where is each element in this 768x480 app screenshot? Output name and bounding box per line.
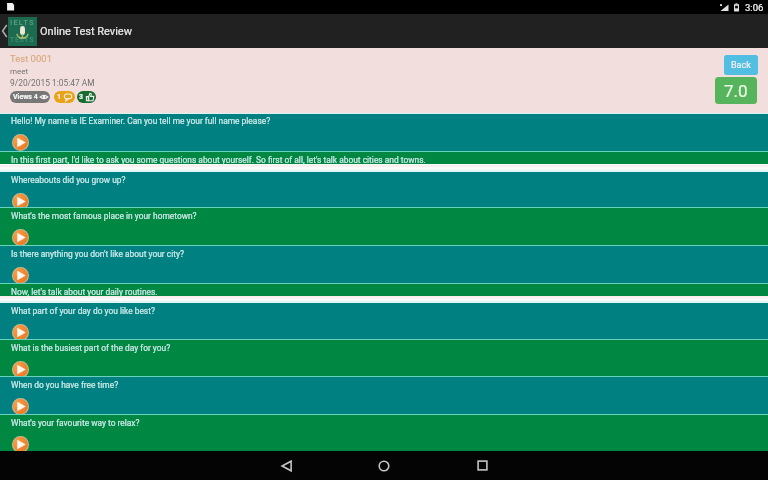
staticText: Online Test Review	[40, 25, 132, 38]
button[interactable]: Hello! My name is IE Examiner. Can you t…	[0, 113, 768, 152]
staticText: When do you have free time?	[11, 380, 119, 390]
staticText: 1	[57, 93, 62, 101]
button[interactable]: 3	[77, 91, 96, 103]
button[interactable]: What's your favourite way to relax?	[0, 415, 768, 451]
button[interactable]: Back	[724, 55, 758, 75]
staticText: 9/20/2015 1:05:47 AM	[10, 78, 95, 88]
button[interactable]: What part of your day do you like best?	[0, 303, 768, 340]
button[interactable]: Play audio	[12, 134, 29, 151]
staticText: Views 4	[13, 93, 38, 101]
staticText: Whereabouts did you grow up?	[11, 175, 126, 185]
button[interactable]: Is there anything you don't like about y…	[0, 246, 768, 284]
button[interactable]: When do you have free time?	[0, 377, 768, 415]
button[interactable]: 1	[54, 91, 75, 103]
staticText: What's your favourite way to relax?	[11, 418, 140, 428]
button[interactable]: Play audio	[12, 229, 29, 246]
button[interactable]: Views 4	[10, 91, 50, 103]
button[interactable]: Back	[266, 451, 306, 480]
button[interactable]: Play audio	[12, 324, 29, 341]
staticText: IELTS	[10, 18, 35, 27]
staticText: meet	[10, 67, 29, 76]
button[interactable]: Play audio	[12, 361, 29, 378]
staticText: 3:06	[745, 2, 764, 13]
staticText: Back	[731, 60, 751, 71]
button[interactable]: Play audio	[12, 398, 29, 415]
staticText: Test 0001	[10, 53, 52, 64]
staticText: TESTS	[10, 36, 35, 44]
button[interactable]: What is the busiest part of the day for …	[0, 340, 768, 377]
button[interactable]: Whereabouts did you grow up?	[0, 172, 768, 208]
button[interactable]: Play audio	[12, 267, 29, 284]
button[interactable]: Play audio	[12, 436, 29, 453]
staticText: Hello! My name is IE Examiner. Can you t…	[11, 116, 271, 126]
staticText: What's the most famous place in your hom…	[11, 211, 197, 221]
button[interactable]: Recent apps	[462, 451, 502, 480]
button[interactable]: Now, let's talk about your daily routine…	[0, 284, 768, 296]
staticText: What part of your day do you like best?	[11, 306, 155, 316]
staticText: Is there anything you don't like about y…	[11, 249, 184, 259]
button[interactable]: 7.0	[715, 77, 757, 104]
staticText: What is the busiest part of the day for …	[11, 343, 171, 353]
button[interactable]: Home	[364, 451, 404, 480]
button[interactable]: In this first part, I'd like to ask you …	[0, 152, 768, 164]
staticText: Now, let's talk about your daily routine…	[11, 287, 158, 297]
staticText: 3	[79, 93, 84, 101]
button[interactable]: Play audio	[12, 193, 29, 210]
staticText: 7.0	[724, 81, 748, 101]
button[interactable]: Navigate up	[0, 14, 8, 48]
staticText: In this first part, I'd like to ask you …	[11, 155, 426, 165]
button[interactable]: What's the most famous place in your hom…	[0, 208, 768, 246]
